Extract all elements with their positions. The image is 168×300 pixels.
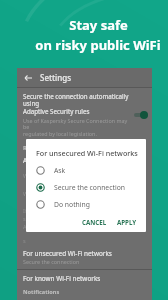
button[interactable]: For unsecured Wi-Fi networks (17, 249, 152, 265)
button[interactable]: CANCEL (79, 216, 110, 228)
button[interactable]: For known Wi-Fi networks (17, 274, 152, 283)
button[interactable]: Secure the connection automatically usin… (17, 88, 152, 141)
button[interactable]: Back (17, 68, 152, 87)
button[interactable]: Secure the connection (36, 183, 140, 192)
staticText: s (23, 237, 26, 245)
staticText: For unsecured Wi-Fi networks (23, 249, 112, 258)
staticText: Ask (54, 166, 66, 175)
staticText: If (23, 207, 27, 215)
staticText: For unsecured Wi-Fi networks (36, 148, 138, 158)
staticText: W (23, 172, 29, 180)
staticText: A (23, 223, 27, 231)
button[interactable]: APPLY (114, 216, 140, 228)
staticText: Settings (40, 72, 72, 83)
staticText: Stay safe (69, 16, 128, 34)
staticText: Notifications (23, 288, 60, 296)
staticText: Secure the connection automatically usin… (23, 92, 131, 116)
staticText: s (23, 215, 26, 223)
staticText: on risky public WiFi (35, 36, 161, 54)
staticText: Secure the connection (54, 183, 125, 192)
button[interactable]: Do nothing (36, 200, 140, 209)
button[interactable]: Ask (36, 166, 140, 175)
staticText: Secure the connection (23, 258, 80, 265)
button[interactable]: Back (23, 73, 33, 83)
staticText: Rules for websites and apps (23, 144, 104, 152)
staticText: Apps (23, 156, 39, 165)
staticText: W (23, 190, 29, 198)
staticText: Do nothing (54, 200, 90, 209)
staticText: Use of Kaspersky Secure Connection may b… (23, 117, 131, 138)
